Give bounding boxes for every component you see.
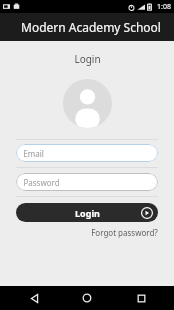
staticText: 1:08 xyxy=(157,2,171,12)
staticText: Login xyxy=(74,52,101,66)
button[interactable]: Home xyxy=(67,286,107,310)
button[interactable]: Email xyxy=(16,144,158,162)
button[interactable]: Recent apps xyxy=(121,286,161,310)
button[interactable]: Password xyxy=(16,173,158,191)
button[interactable]: Forgot password? xyxy=(91,227,158,238)
other: Submit login xyxy=(141,207,153,219)
staticText: Modern Academy School xyxy=(21,19,161,35)
staticText: Email xyxy=(23,148,44,159)
button[interactable]: Login xyxy=(16,203,158,222)
staticText: Login xyxy=(75,207,100,219)
button[interactable]: Back xyxy=(14,286,54,310)
staticText: Password xyxy=(23,177,60,188)
